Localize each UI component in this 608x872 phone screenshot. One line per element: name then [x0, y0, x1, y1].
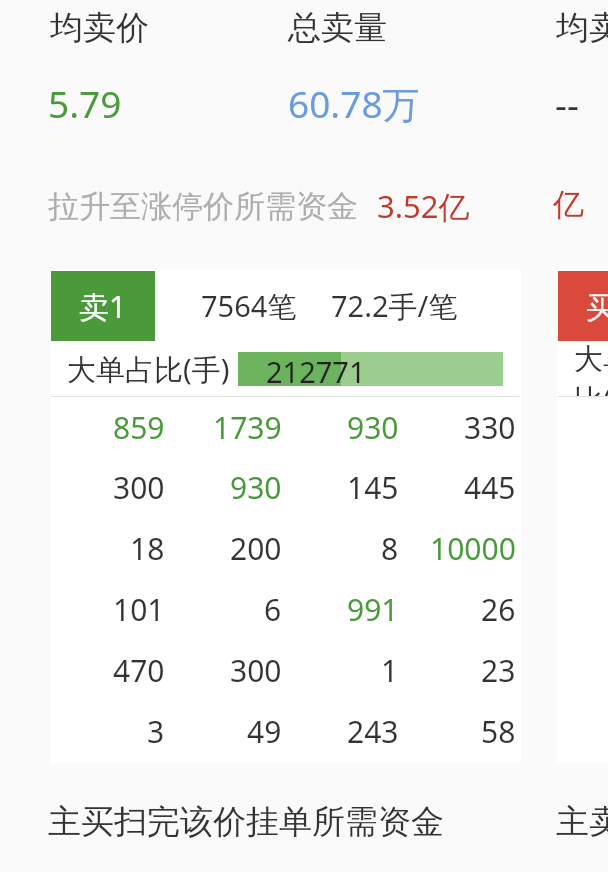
staticText: 859	[113, 407, 165, 448]
staticText: 10000	[430, 528, 516, 569]
staticText: 6	[264, 589, 282, 630]
staticText: 7564笔	[201, 286, 297, 326]
button[interactable]: 470	[51, 640, 520, 701]
staticText: 买1	[586, 286, 608, 327]
button[interactable]: 买1	[558, 271, 608, 341]
staticText: 大单占比(手)	[67, 349, 230, 389]
staticText: 3	[147, 711, 165, 752]
staticText: 5.79	[48, 78, 122, 128]
button[interactable]: 18	[51, 518, 520, 579]
staticText: --	[555, 78, 579, 128]
button[interactable]: 主买扫完该价挂单所需资金	[48, 801, 444, 843]
staticText: 卖1	[79, 286, 127, 327]
staticText: 8	[381, 528, 399, 569]
staticText: 18	[130, 528, 165, 569]
staticText: 60.78万	[288, 78, 420, 129]
staticText: 445	[464, 467, 516, 508]
staticText: 23	[481, 650, 516, 691]
staticText: 大单占比(手)	[574, 341, 608, 396]
staticText: 101	[113, 589, 165, 630]
button[interactable]: 拉升至涨停价所需资金	[48, 185, 470, 227]
staticText: 300	[230, 650, 282, 691]
button[interactable]: 3	[51, 701, 520, 762]
button[interactable]: 101	[51, 579, 520, 640]
staticText: 243	[347, 711, 399, 752]
staticText: 470	[113, 650, 165, 691]
staticText: 拉升至涨停价所需资金	[48, 187, 358, 226]
staticText: 1	[381, 650, 399, 691]
staticText: 26	[481, 589, 516, 630]
staticText: 均卖价	[50, 7, 149, 49]
staticText: 49	[247, 711, 282, 752]
staticText: 145	[347, 467, 399, 508]
staticText: 58	[481, 711, 516, 752]
button[interactable]: 859	[51, 397, 520, 457]
staticText: 991	[347, 589, 399, 630]
staticText: 3.52亿	[377, 185, 470, 227]
staticText: 930	[347, 407, 399, 448]
staticText: 330	[464, 407, 516, 448]
staticText: 300	[113, 467, 165, 508]
staticText: 主卖	[556, 801, 608, 843]
staticText: 1739	[213, 407, 282, 448]
staticText: 均卖价	[556, 7, 608, 49]
staticText: 930	[230, 467, 282, 508]
button[interactable]: 卖1	[51, 271, 520, 341]
staticText: 200	[230, 528, 282, 569]
staticText: 72.2手/笔	[331, 286, 458, 326]
staticText: 亿	[553, 185, 584, 224]
staticText: 总卖量	[288, 7, 387, 49]
button[interactable]: 大单占比(手)	[51, 341, 520, 396]
staticText: 212771	[266, 352, 366, 386]
button[interactable]: 300	[51, 457, 520, 518]
